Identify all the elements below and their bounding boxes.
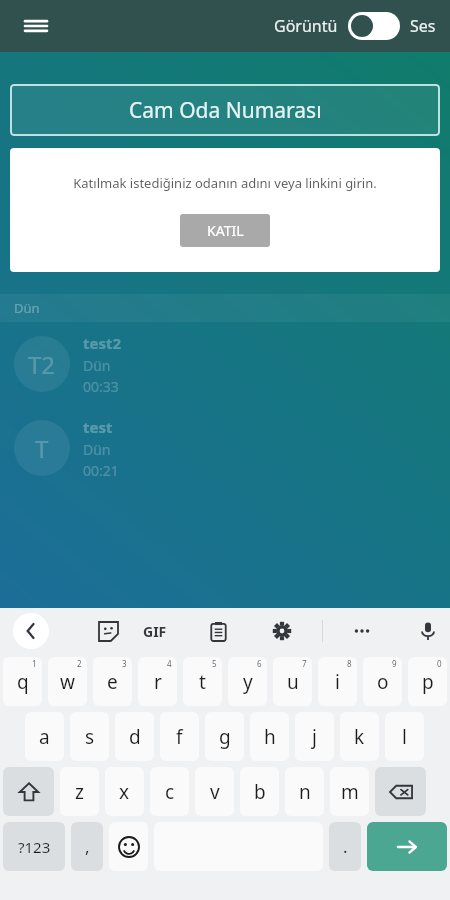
button[interactable]: GIF [135,611,175,651]
staticText: q [17,669,29,695]
staticText: T [35,432,49,465]
staticText: test2 [83,333,122,353]
button[interactable]: More options [342,611,382,651]
button[interactable]: n [285,767,324,816]
staticText: 9 [392,658,397,669]
button[interactable]: a [25,712,64,761]
button[interactable]: m [330,767,369,816]
staticText: c [165,779,175,805]
staticText: x [119,779,130,805]
button[interactable]: Enter [367,822,447,871]
button[interactable]: h [250,712,289,761]
staticText: h [264,724,276,750]
staticText: y [243,669,253,695]
button[interactable]: k [340,712,379,761]
staticText: , [85,835,90,858]
button[interactable]: r [138,657,177,706]
button[interactable]: w [48,657,87,706]
staticText: l [402,724,407,750]
button[interactable]: Voice input [408,611,448,651]
staticText: g [219,724,231,750]
button[interactable]: Clipboard [198,611,238,651]
staticText: KATIL [207,221,244,240]
staticText: z [75,779,84,805]
other: Shift [18,781,40,803]
button[interactable]: j [295,712,334,761]
button[interactable]: Back [13,613,49,649]
staticText: Ses [410,15,436,37]
button[interactable]: v [195,767,234,816]
staticText: Dün [83,440,111,459]
button[interactable]: ?123 [3,822,65,871]
button[interactable]: Settings [262,611,302,651]
button[interactable]: Stickers [88,611,128,651]
button[interactable]: . [329,822,361,871]
staticText: t [199,669,206,695]
staticText: . [343,835,348,858]
button[interactable]: T [0,406,450,490]
button[interactable]: q [3,657,42,706]
staticText: u [287,669,299,695]
staticText: i [335,669,340,695]
button[interactable]: Toggle video audio [348,12,400,40]
button[interactable]: KATIL [180,214,270,247]
staticText: e [107,669,118,695]
other: Enter [395,835,419,859]
button[interactable]: e [93,657,132,706]
button[interactable]: Cam Oda Numarası [10,84,440,136]
other: Backspace [389,780,413,804]
staticText: j [312,724,317,750]
staticText: 7 [302,658,307,669]
button[interactable]: y [228,657,267,706]
button[interactable]: Backspace [375,767,426,816]
staticText: T2 [28,348,56,381]
staticText: 6 [257,658,262,669]
staticText: r [154,669,162,695]
staticText: k [354,724,365,750]
button[interactable]: Shift [3,767,54,816]
button[interactable]: p [408,657,447,706]
staticText: 0 [437,658,442,669]
button[interactable]: b [240,767,279,816]
staticText: s [85,724,95,750]
button[interactable]: l [385,712,424,761]
button[interactable]: d [115,712,154,761]
button[interactable]: Emoji [109,822,148,871]
button[interactable]: c [150,767,189,816]
staticText: 00:21 [83,461,119,480]
staticText: o [377,669,389,695]
button[interactable]: s [70,712,109,761]
button[interactable]: z [60,767,99,816]
button[interactable]: x [105,767,144,816]
staticText: 00:33 [83,377,119,396]
staticText: 2 [77,658,82,669]
staticText: 1 [32,658,37,669]
staticText: Cam Oda Numarası [129,96,322,125]
staticText: 5 [212,658,217,669]
staticText: a [39,724,50,750]
staticText: ?123 [18,837,51,857]
staticText: test [83,417,113,437]
staticText: Görüntü [274,15,338,37]
staticText: n [299,779,311,805]
staticText: Dün [14,299,40,317]
button[interactable]: u [273,657,312,706]
button[interactable]: f [160,712,199,761]
button[interactable]: Menu [16,6,56,46]
staticText: 3 [122,658,127,669]
button[interactable]: o [363,657,402,706]
staticText: d [129,724,141,750]
button[interactable]: T2 [0,322,450,406]
button[interactable]: t [183,657,222,706]
staticText: 4 [167,658,172,669]
staticText: 8 [347,658,352,669]
staticText: p [422,669,434,695]
button[interactable]: , [71,822,103,871]
staticText: Katılmak istediğiniz odanın adını veya l… [73,174,377,192]
button[interactable]: g [205,712,244,761]
button[interactable]: i [318,657,357,706]
staticText: m [341,779,359,805]
staticText: f [176,724,183,750]
other: Emoji [118,836,140,858]
